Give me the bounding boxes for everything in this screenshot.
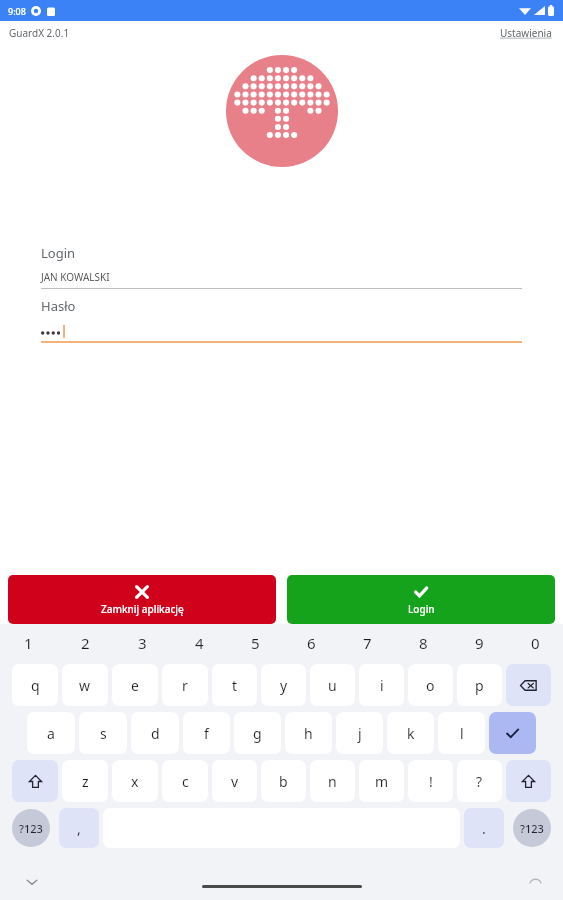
button[interactable]: Ustawienia (498, 24, 554, 42)
staticText: Login (408, 602, 435, 616)
button[interactable]: 3 (114, 624, 171, 661)
button[interactable]: b (261, 760, 306, 802)
button[interactable]: 6 (283, 624, 339, 661)
staticText: m (375, 772, 389, 791)
button[interactable]: Shift (506, 760, 551, 802)
staticText: 1 (24, 633, 33, 653)
button[interactable]: i (359, 664, 404, 706)
staticText: 8 (419, 633, 428, 653)
button[interactable]: Period (464, 808, 504, 848)
staticText: l (460, 724, 464, 743)
staticText: 0 (531, 633, 540, 653)
button[interactable]: f (183, 712, 230, 754)
button[interactable]: 8 (395, 624, 451, 661)
button[interactable]: ? (457, 760, 502, 802)
button[interactable]: 4 (171, 624, 227, 661)
staticText: ? (476, 772, 483, 791)
staticText: n (328, 772, 337, 791)
button[interactable]: z (62, 760, 108, 802)
staticText: w (79, 676, 91, 695)
button[interactable]: Comma (59, 808, 99, 848)
staticText: ! (429, 772, 433, 791)
button[interactable]: Enter (489, 712, 536, 754)
staticText: g (253, 724, 262, 743)
staticText: Login (41, 244, 76, 262)
staticText: i (380, 676, 384, 695)
staticText: Hasło (41, 297, 76, 315)
staticText: 9 (475, 633, 484, 653)
button[interactable]: ! (408, 760, 453, 802)
staticText: e (131, 676, 139, 695)
button[interactable]: a (27, 712, 75, 754)
staticText: p (475, 676, 484, 695)
button[interactable]: Keyboard settings (525, 872, 545, 892)
button[interactable]: Backspace (506, 664, 551, 706)
button[interactable]: u (310, 664, 355, 706)
staticText: , (77, 819, 81, 838)
staticText: y (280, 676, 288, 695)
button[interactable]: q (12, 664, 58, 706)
staticText: 6 (307, 633, 316, 653)
button[interactable]: e (112, 664, 158, 706)
button[interactable]: s (79, 712, 127, 754)
button[interactable]: m (359, 760, 404, 802)
staticText: x (131, 772, 139, 791)
button[interactable]: JAN KOWALSKI (41, 270, 522, 289)
button[interactable] (41, 325, 522, 343)
button[interactable]: Login (287, 575, 555, 624)
staticText: f (204, 724, 209, 743)
staticText: j (358, 724, 362, 743)
staticText: a (47, 724, 55, 743)
button[interactable]: r (162, 664, 208, 706)
button[interactable]: c (162, 760, 208, 802)
staticText: 5 (251, 633, 260, 653)
button[interactable]: Shift (12, 760, 58, 802)
staticText: 4 (195, 633, 204, 653)
button[interactable]: l (438, 712, 485, 754)
staticText: h (304, 724, 313, 743)
button[interactable]: 9 (451, 624, 507, 661)
staticText: . (482, 819, 486, 838)
staticText: v (231, 772, 239, 791)
staticText: 9:08 (8, 5, 26, 17)
button[interactable]: v (212, 760, 257, 802)
button[interactable]: g (234, 712, 281, 754)
button[interactable]: 0 (507, 624, 563, 661)
staticText: k (407, 724, 415, 743)
staticText: o (426, 676, 435, 695)
staticText: t (232, 676, 238, 695)
button[interactable]: Hide keyboard (22, 872, 42, 892)
staticText: u (328, 676, 337, 695)
button[interactable]: Zamknij aplikację (8, 575, 276, 624)
button[interactable]: p (457, 664, 502, 706)
button[interactable]: t (212, 664, 257, 706)
button[interactable]: 5 (227, 624, 283, 661)
staticText: 2 (81, 633, 90, 653)
staticText: ?123 (19, 821, 43, 836)
staticText: d (151, 724, 160, 743)
button[interactable]: w (62, 664, 108, 706)
button[interactable]: ?123 (513, 809, 551, 847)
button[interactable]: h (285, 712, 332, 754)
staticText: b (279, 772, 288, 791)
button[interactable]: 2 (57, 624, 114, 661)
staticText: GuardX 2.0.1 (9, 26, 70, 40)
button[interactable]: ?123 (12, 809, 50, 847)
staticText: JAN KOWALSKI (41, 270, 110, 284)
staticText: Zamknij aplikację (101, 602, 184, 616)
button[interactable]: x (112, 760, 158, 802)
button[interactable]: 1 (0, 624, 57, 661)
staticText: 3 (138, 633, 147, 653)
staticText: Ustawienia (500, 26, 552, 40)
button[interactable]: n (310, 760, 355, 802)
button[interactable]: 7 (339, 624, 395, 661)
button[interactable]: o (408, 664, 453, 706)
staticText: c (182, 772, 189, 791)
button[interactable]: y (261, 664, 306, 706)
button[interactable]: j (336, 712, 383, 754)
button[interactable]: k (387, 712, 434, 754)
staticText: z (82, 772, 89, 791)
button[interactable]: d (131, 712, 179, 754)
staticText: s (100, 724, 107, 743)
